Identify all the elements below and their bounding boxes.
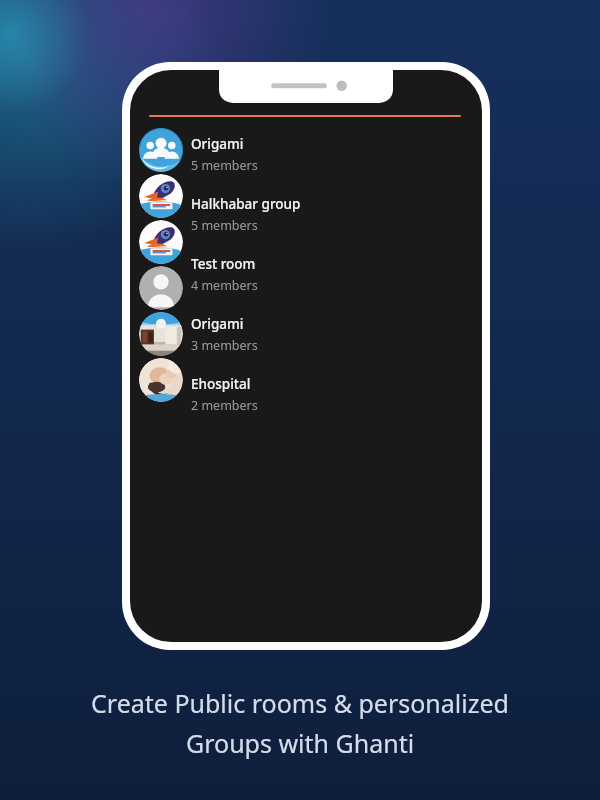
- button[interactable]: Origami: [191, 314, 441, 355]
- button[interactable]: Origami room avatar: [139, 312, 183, 356]
- button[interactable]: Halkhabar group avatar: [139, 220, 183, 264]
- button[interactable]: Test room: [191, 254, 441, 295]
- staticText: 2 members: [191, 397, 258, 414]
- button[interactable]: Halkhabar group: [191, 194, 441, 235]
- button[interactable]: Origami group avatar: [139, 128, 183, 172]
- staticText: Origami: [191, 135, 244, 153]
- staticText: Create Public rooms & personalized: [91, 686, 509, 720]
- staticText: Ehospital: [191, 375, 251, 393]
- staticText: 5 members: [191, 157, 258, 174]
- button[interactable]: Halkhabar group avatar: [139, 174, 183, 218]
- button[interactable]: Ehospital avatar: [139, 358, 183, 402]
- button[interactable]: Origami: [191, 134, 441, 175]
- staticText: 4 members: [191, 277, 258, 294]
- staticText: Origami: [191, 315, 244, 333]
- staticText: 5 members: [191, 217, 258, 234]
- button[interactable]: Ehospital: [191, 374, 441, 415]
- staticText: 3 members: [191, 337, 258, 354]
- staticText: Test room: [191, 255, 256, 273]
- staticText: Halkhabar group: [191, 195, 301, 213]
- staticText: Groups with Ghanti: [186, 726, 415, 760]
- button[interactable]: Default group avatar: [139, 266, 183, 310]
